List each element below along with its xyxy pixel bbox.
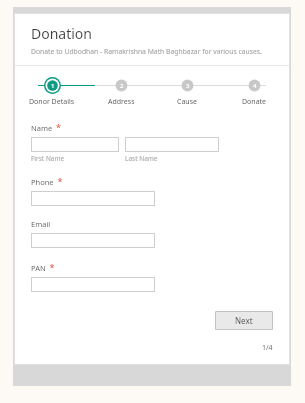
button[interactable] <box>31 137 119 152</box>
staticText: PAN * <box>31 261 55 273</box>
staticText: Name * <box>31 121 62 133</box>
button[interactable] <box>31 277 155 292</box>
staticText: 3 <box>186 82 190 90</box>
staticText: Donate to Udbodhan - Ramakrishna Math Ba… <box>31 47 262 56</box>
button[interactable]: 4 <box>242 77 267 107</box>
staticText: Cause <box>177 97 197 107</box>
staticText: 1/4 <box>262 343 273 353</box>
staticText: 4 <box>253 82 257 90</box>
button[interactable] <box>31 233 155 248</box>
button[interactable] <box>125 137 219 152</box>
staticText: Last Name <box>125 154 158 163</box>
staticText: First Name <box>31 154 65 163</box>
button[interactable] <box>31 191 155 206</box>
staticText: Address <box>108 97 135 107</box>
staticText: Email <box>31 219 51 229</box>
button[interactable]: 1 <box>29 77 75 107</box>
button[interactable]: Next <box>215 311 273 330</box>
staticText: Donate <box>242 97 267 107</box>
staticText: Donation <box>31 24 92 43</box>
staticText: 2 <box>120 82 124 90</box>
staticText: Donor Details <box>29 97 75 107</box>
button[interactable]: 2 <box>108 77 135 107</box>
staticText: Next <box>235 315 253 326</box>
button[interactable]: 3 <box>177 77 197 107</box>
staticText: Phone * <box>31 175 63 187</box>
staticText: 1 <box>51 82 55 90</box>
